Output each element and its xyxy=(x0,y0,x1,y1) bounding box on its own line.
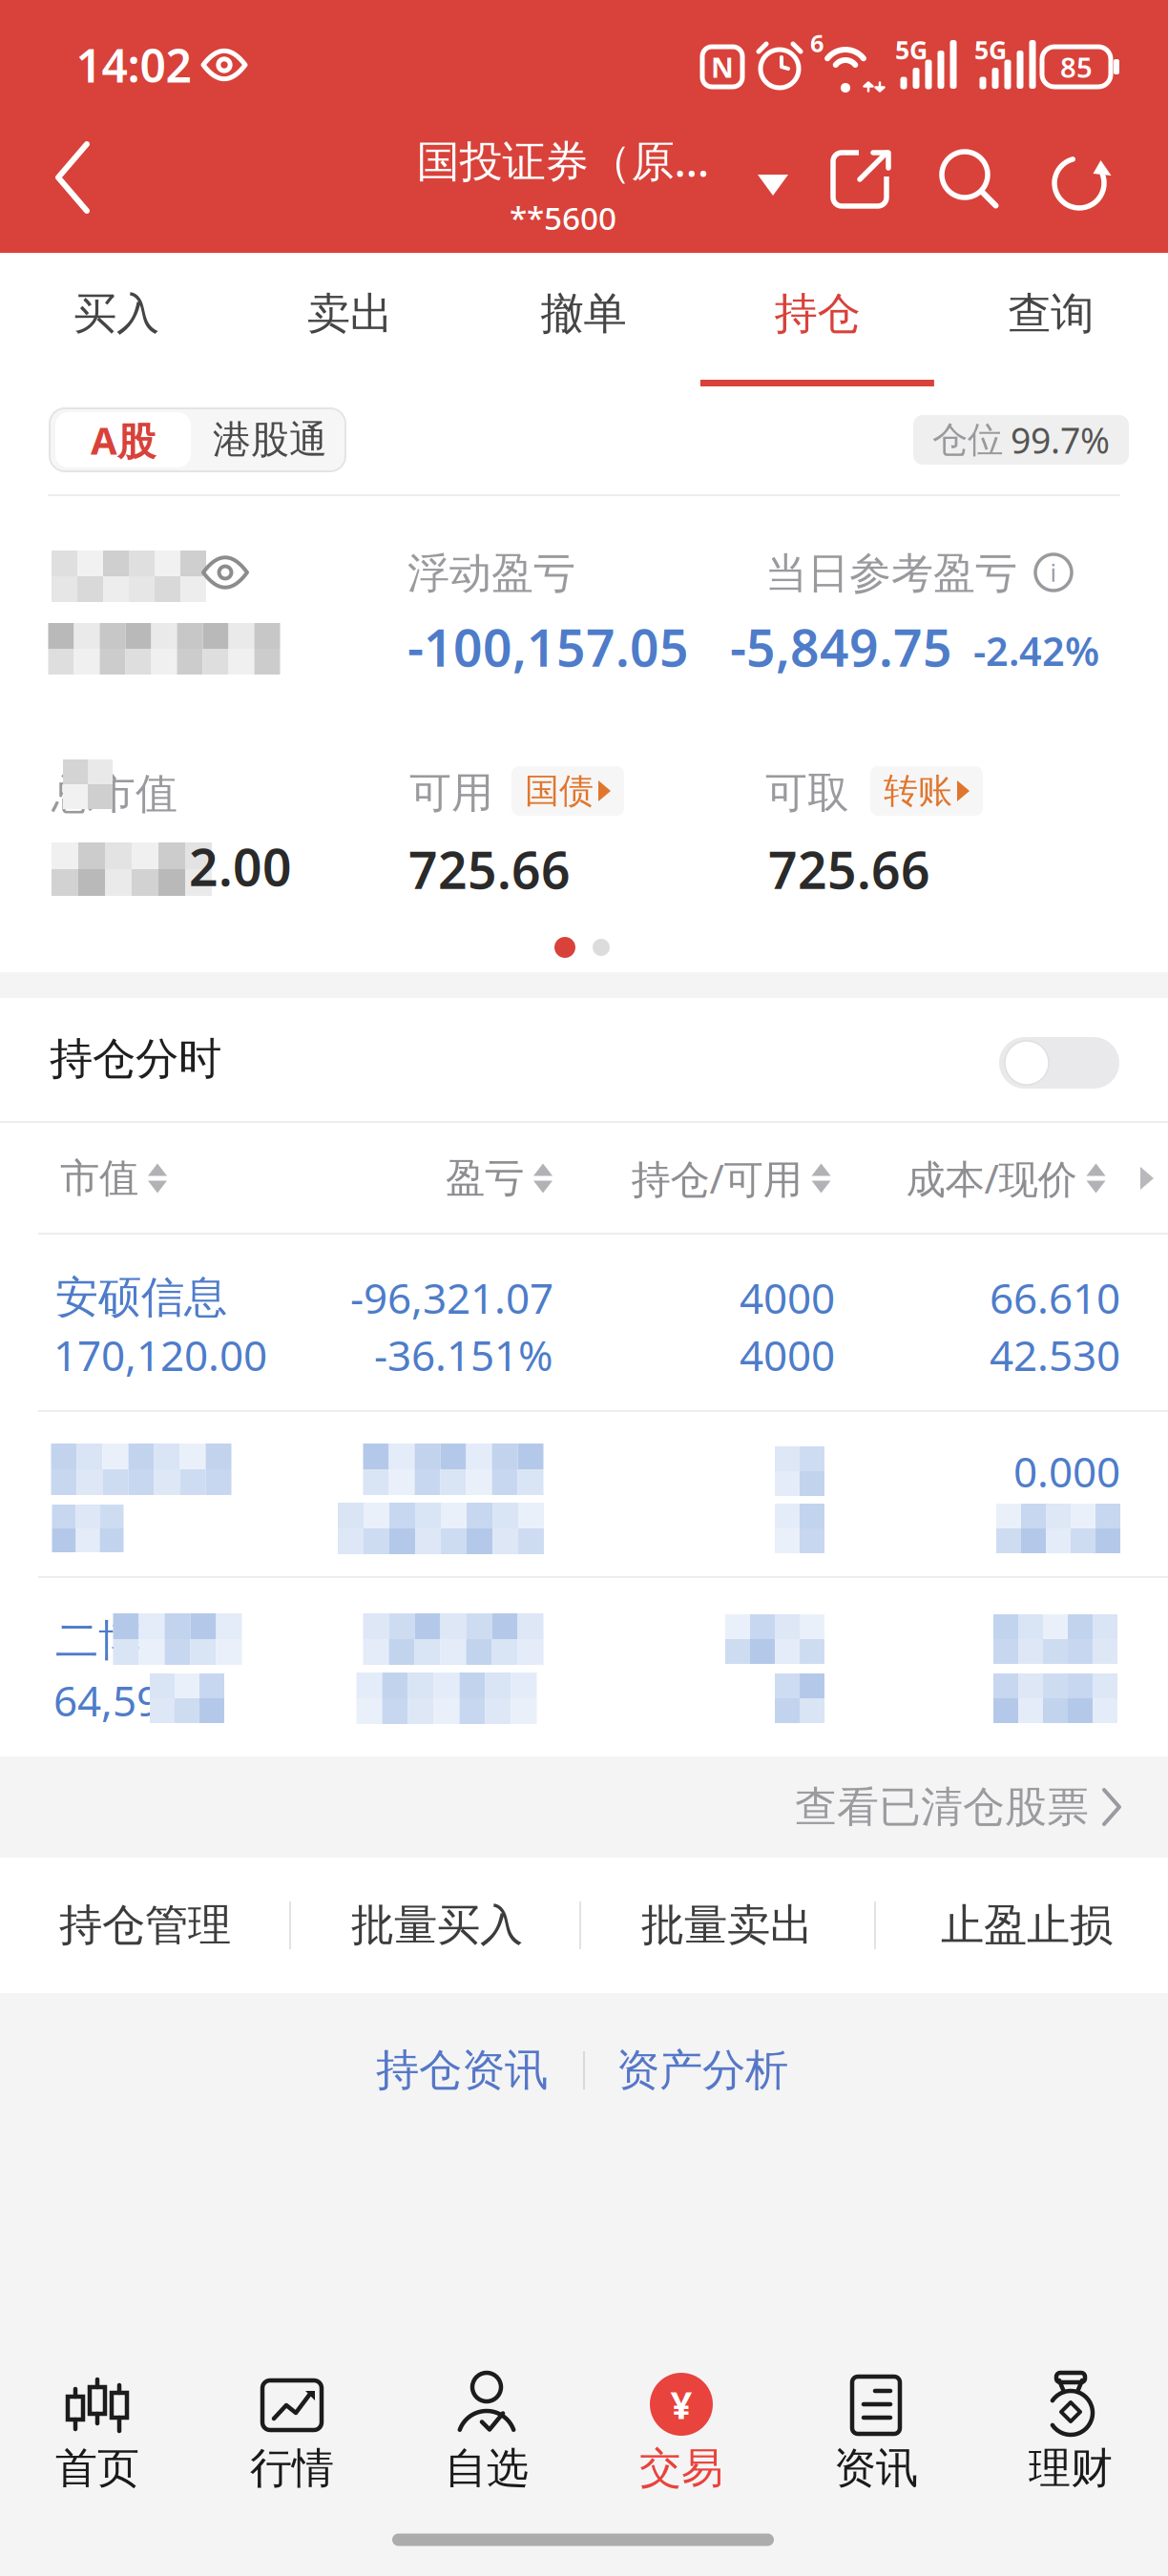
button[interactable]: 批量卖出 xyxy=(641,1878,813,1973)
staticText: 盈亏 xyxy=(446,1154,524,1203)
staticText: 总市值 xyxy=(52,768,177,820)
staticText: -36.151% xyxy=(374,1327,553,1383)
staticText: 卖出 xyxy=(307,287,393,341)
button[interactable]: A股 xyxy=(55,412,191,467)
staticText: 安硕信息 xyxy=(55,1271,227,1324)
staticText: 当日参考盈亏 xyxy=(765,548,1017,599)
staticText: 行情 xyxy=(250,2442,334,2494)
staticText: 6 xyxy=(810,27,824,59)
staticText: ¥ xyxy=(670,2379,692,2430)
staticText: 批量买入 xyxy=(351,1899,523,1952)
staticText: -5,849.75 xyxy=(730,613,952,681)
staticText: 止盈止损 xyxy=(941,1899,1113,1952)
staticText: 4000 xyxy=(740,1270,835,1325)
button[interactable]: 买入 xyxy=(0,253,234,386)
button[interactable]: Share xyxy=(825,141,898,214)
button[interactable]: 查看已清仓股票 xyxy=(795,1781,1119,1833)
staticText: 首页 xyxy=(55,2442,139,2494)
staticText: 港股通 xyxy=(213,416,327,463)
staticText: 自选 xyxy=(445,2442,529,2494)
staticText: 持仓/可用 xyxy=(631,1152,802,1205)
button[interactable]: Hide balance xyxy=(196,551,255,594)
button[interactable]: 持仓管理 xyxy=(59,1878,231,1973)
staticText: 42.530 xyxy=(990,1327,1120,1383)
staticText: 仓位 xyxy=(932,418,1003,462)
staticText: -96,321.07 xyxy=(350,1270,553,1325)
staticText: 5G xyxy=(895,33,928,66)
button[interactable]: 自选 xyxy=(401,2352,573,2520)
staticText: 国债 xyxy=(525,770,594,812)
button[interactable]: 0.000 xyxy=(0,1412,1168,1578)
staticText: 64,59 xyxy=(53,1672,160,1728)
staticText: 2.00 xyxy=(189,833,292,900)
button[interactable]: 港股通 xyxy=(213,405,327,475)
button[interactable]: 市值 xyxy=(60,1154,167,1203)
staticText: 725.66 xyxy=(408,835,571,903)
button[interactable]: 卖出 xyxy=(234,253,467,386)
staticText: -100,157.05 xyxy=(407,613,689,681)
staticText: 5G xyxy=(974,33,1007,66)
button[interactable]: 持仓/可用 xyxy=(631,1152,831,1205)
button[interactable]: 转账 xyxy=(870,766,983,816)
button[interactable]: 国债 xyxy=(511,766,624,816)
button[interactable]: 撤单 xyxy=(467,253,701,386)
staticText: N xyxy=(711,48,734,85)
staticText: 二博 xyxy=(55,1614,141,1668)
staticText: 浮动盈亏 xyxy=(407,548,575,599)
staticText: 725.66 xyxy=(768,835,930,903)
staticText: 资产分析 xyxy=(616,2044,788,2097)
button[interactable]: 持仓资讯 xyxy=(365,2032,559,2108)
staticText: 查询 xyxy=(1008,287,1094,341)
button[interactable]: 盈亏 xyxy=(446,1154,553,1203)
staticText: i xyxy=(1050,556,1057,588)
button[interactable]: 仓位 xyxy=(913,415,1129,465)
staticText: 4000 xyxy=(740,1327,835,1383)
button[interactable]: 成本/现价 xyxy=(906,1152,1105,1205)
staticText: A股 xyxy=(91,414,156,465)
staticText: -2.42% xyxy=(973,625,1099,677)
button[interactable]: 持仓分时开关 xyxy=(999,1037,1119,1089)
staticText: 转账 xyxy=(884,770,952,812)
staticText: 持仓分时 xyxy=(50,1032,221,1086)
staticText: 85 xyxy=(1060,48,1093,85)
staticText: 批量卖出 xyxy=(641,1899,813,1952)
staticText: **5600 xyxy=(510,197,616,239)
staticText: 理财 xyxy=(1029,2442,1113,2494)
button[interactable]: 持仓 xyxy=(701,253,934,386)
staticText: 撤单 xyxy=(541,287,627,341)
staticText: 持仓资讯 xyxy=(376,2044,548,2097)
staticText: 国投证券（原… xyxy=(417,131,709,189)
button[interactable]: Info xyxy=(1031,550,1076,595)
staticText: 0.000 xyxy=(1013,1443,1120,1499)
button[interactable]: 行情 xyxy=(206,2352,378,2520)
button[interactable]: 止盈止损 xyxy=(941,1878,1113,1973)
button[interactable]: 批量买入 xyxy=(351,1878,523,1973)
button[interactable]: 查询 xyxy=(934,253,1168,386)
button[interactable]: 首页 xyxy=(11,2352,183,2520)
button[interactable]: Refresh xyxy=(1043,143,1116,216)
staticText: 查看已清仓股票 xyxy=(795,1781,1089,1833)
button[interactable]: 国投证券（原… xyxy=(417,131,709,239)
staticText: 可取 xyxy=(765,767,849,819)
staticText: 持仓管理 xyxy=(59,1899,231,1952)
staticText: 170,120.00 xyxy=(53,1327,267,1383)
staticText: 市值 xyxy=(60,1154,138,1203)
staticText: 成本/现价 xyxy=(906,1152,1077,1205)
button[interactable]: 二博 xyxy=(0,1578,1168,1756)
staticText: 买入 xyxy=(73,287,159,341)
button[interactable]: 资讯 xyxy=(790,2352,962,2520)
staticText: 持仓 xyxy=(774,287,860,341)
button[interactable]: Switch account xyxy=(748,165,798,205)
staticText: 资讯 xyxy=(834,2442,918,2494)
staticText: 可用 xyxy=(409,767,493,819)
button[interactable]: 资产分析 xyxy=(605,2032,800,2108)
staticText: 99.7% xyxy=(1011,416,1110,463)
staticText: 交易 xyxy=(639,2442,723,2494)
button[interactable]: 安硕信息 xyxy=(0,1235,1168,1412)
button[interactable]: Back xyxy=(41,127,108,232)
button[interactable]: 理财 xyxy=(985,2352,1157,2520)
staticText: 66.610 xyxy=(990,1270,1120,1325)
button[interactable]: Search xyxy=(933,143,1006,216)
staticText: 14:02 xyxy=(76,34,191,95)
button[interactable]: ¥ xyxy=(595,2352,767,2520)
